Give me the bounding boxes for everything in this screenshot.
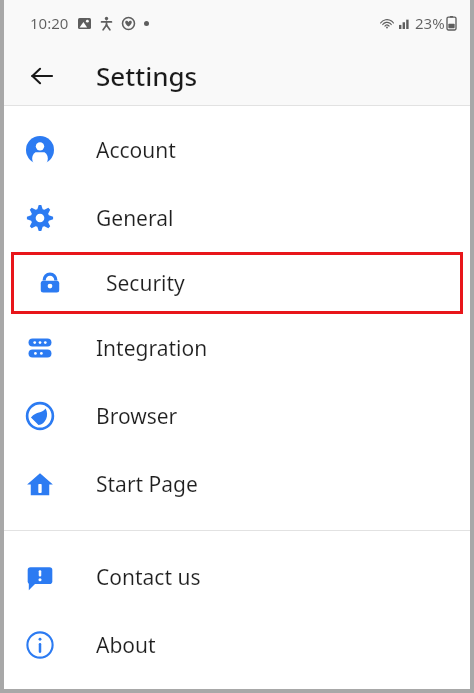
staticText: Browser [96, 402, 178, 431]
button[interactable]: Browser [4, 382, 470, 450]
staticText: Settings [96, 58, 198, 93]
staticText: Integration [96, 334, 208, 363]
staticText: About [96, 631, 156, 660]
staticText: Start Page [96, 470, 198, 499]
button[interactable]: Start Page [4, 450, 470, 518]
staticText: General [96, 204, 174, 233]
button[interactable]: About [4, 611, 470, 679]
button[interactable]: Integration [4, 314, 470, 382]
button[interactable]: Account [4, 116, 470, 184]
staticText: 10:20 [30, 13, 69, 33]
button[interactable]: General [4, 184, 470, 252]
staticText: Account [96, 136, 176, 165]
button[interactable]: Security [14, 255, 460, 311]
button[interactable]: Back [20, 54, 64, 98]
staticText: Contact us [96, 563, 201, 592]
staticText: 23% [415, 13, 445, 33]
staticText: Security [106, 269, 185, 298]
button[interactable]: Contact us [4, 543, 470, 611]
